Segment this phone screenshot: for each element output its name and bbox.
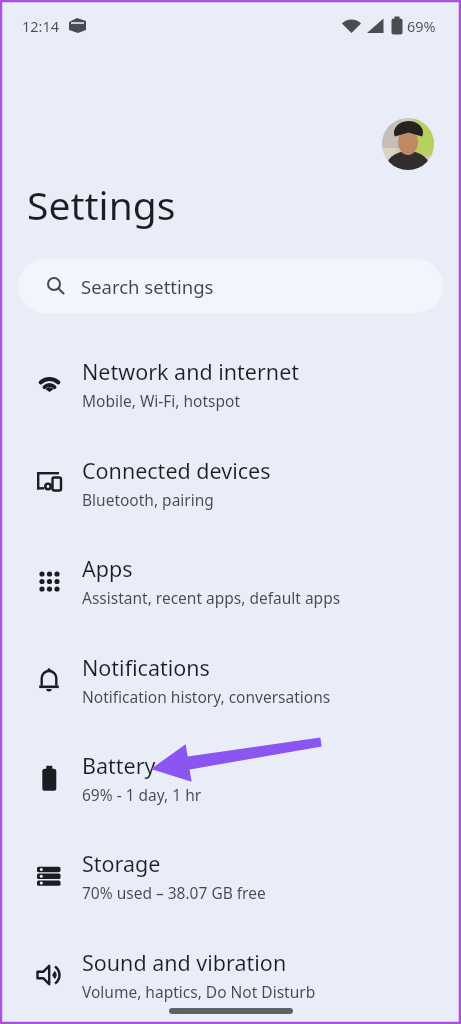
- staticText: 69%: [407, 16, 436, 36]
- staticText: 12:14: [22, 16, 60, 36]
- staticText: Notifications: [82, 653, 210, 682]
- staticText: 69% - 1 day, 1 hr: [82, 784, 202, 805]
- staticText: Storage: [82, 849, 161, 878]
- button[interactable]: Sound and vibration: [0, 926, 461, 1024]
- staticText: Assistant, recent apps, default apps: [82, 587, 341, 608]
- button[interactable]: [382, 118, 434, 170]
- button[interactable]: Connected devices: [0, 434, 461, 532]
- staticText: Network and internet: [82, 357, 300, 386]
- button[interactable]: Network and internet: [0, 335, 461, 433]
- staticText: Connected devices: [82, 456, 271, 485]
- button[interactable]: Apps: [0, 532, 461, 630]
- staticText: Bluetooth, pairing: [82, 489, 214, 510]
- staticText: Battery: [82, 751, 156, 780]
- staticText: Volume, haptics, Do Not Disturb: [82, 981, 316, 1002]
- staticText: Notification history, conversations: [82, 686, 331, 707]
- staticText: Sound and vibration: [82, 948, 287, 977]
- staticText: Settings: [27, 178, 176, 231]
- staticText: Mobile, Wi-Fi, hotspot: [82, 390, 241, 411]
- button[interactable]: Battery: [0, 729, 461, 827]
- button[interactable]: Storage: [0, 827, 461, 925]
- button[interactable]: Notifications: [0, 631, 461, 729]
- staticText: 70% used – 38.07 GB free: [82, 882, 266, 903]
- staticText: Apps: [82, 554, 133, 583]
- staticText: Search settings: [81, 274, 214, 299]
- button[interactable]: Search settings: [18, 259, 443, 313]
